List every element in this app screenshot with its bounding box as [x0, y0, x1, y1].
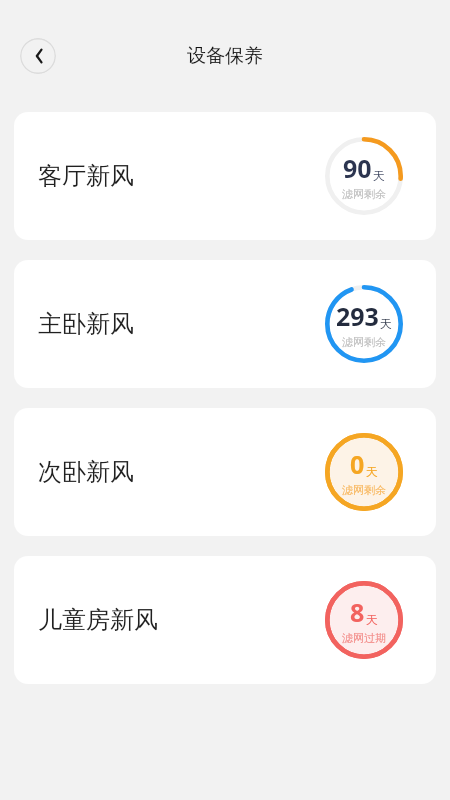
- staticText: 0: [350, 447, 365, 481]
- staticText: 天: [373, 168, 385, 183]
- staticText: 滤网剩余: [342, 483, 386, 497]
- staticText: 293: [336, 299, 379, 333]
- staticText: 客厅新风: [38, 161, 134, 191]
- staticText: 滤网剩余: [342, 335, 386, 349]
- staticText: 天: [366, 464, 378, 479]
- staticText: 次卧新风: [38, 457, 134, 487]
- staticText: 主卧新风: [38, 309, 134, 339]
- staticText: 8: [350, 595, 365, 629]
- staticText: 90: [343, 151, 372, 185]
- button[interactable]: 主卧新风: [14, 260, 436, 388]
- staticText: 滤网过期: [342, 631, 386, 645]
- staticText: 滤网剩余: [342, 187, 386, 201]
- button[interactable]: 儿童房新风: [14, 556, 436, 684]
- button[interactable]: 次卧新风: [14, 408, 436, 536]
- staticText: 天: [366, 612, 378, 627]
- button[interactable]: Back: [20, 38, 56, 74]
- button[interactable]: 客厅新风: [14, 112, 436, 240]
- staticText: 设备保养: [187, 44, 263, 68]
- staticText: 天: [380, 316, 392, 331]
- staticText: 儿童房新风: [38, 605, 158, 635]
